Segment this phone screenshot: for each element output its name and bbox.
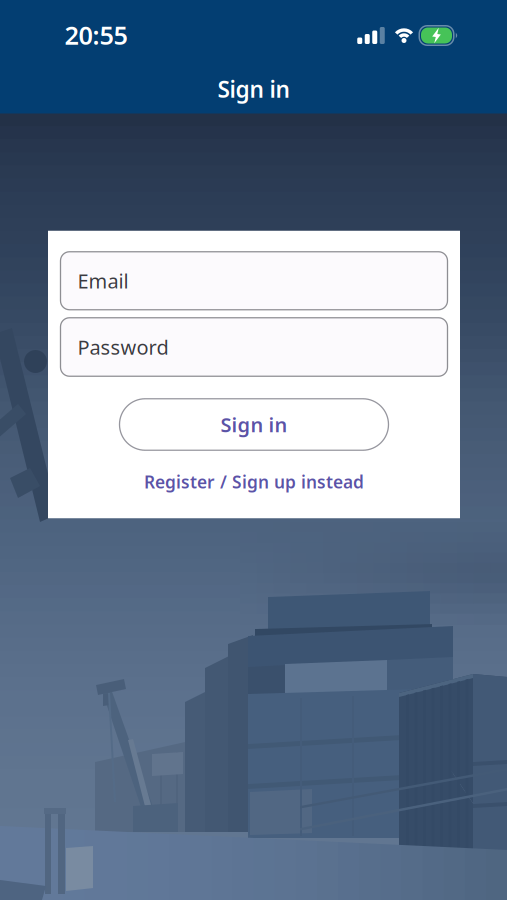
- staticText: Sign in: [217, 74, 289, 104]
- staticText: Password: [77, 334, 168, 360]
- staticText: Register / Sign up instead: [144, 470, 364, 493]
- staticText: Sign in: [220, 411, 287, 438]
- button[interactable]: Sign in: [119, 399, 388, 450]
- button[interactable]: Register / Sign up instead: [144, 465, 364, 498]
- button[interactable]: Email: [60, 252, 447, 310]
- button[interactable]: Password: [60, 318, 447, 376]
- staticText: 20:55: [64, 18, 127, 52]
- staticText: Email: [77, 267, 128, 294]
